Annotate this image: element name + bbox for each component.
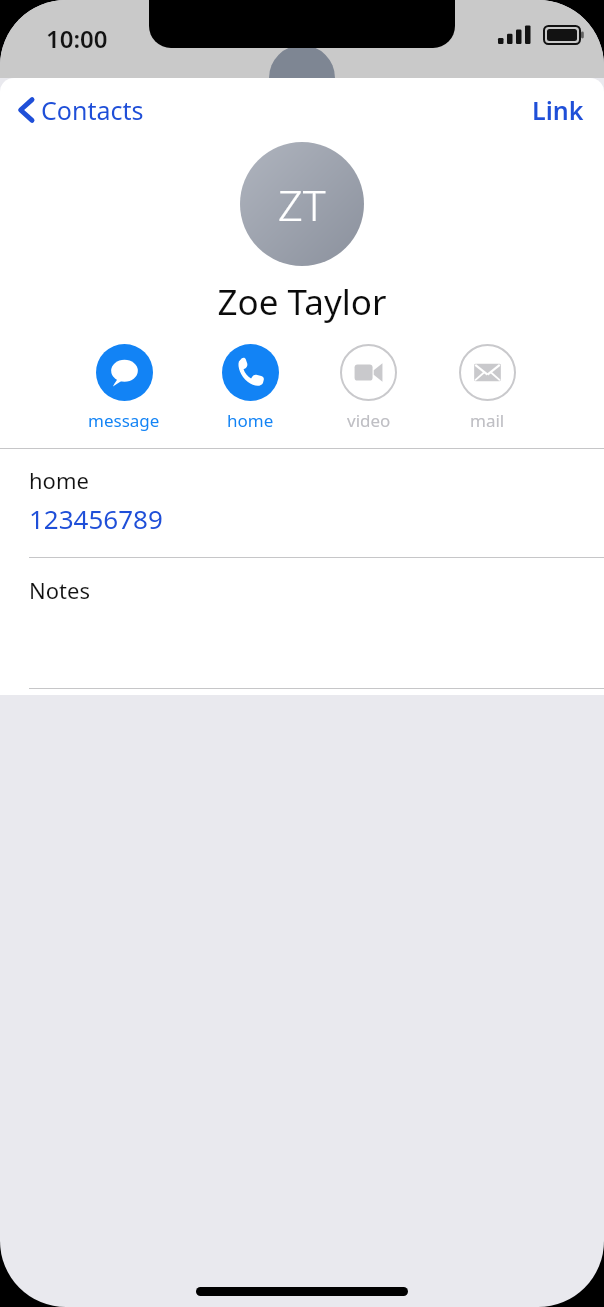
staticText: ZT xyxy=(278,175,326,234)
button[interactable]: mail xyxy=(457,344,518,432)
button[interactable]: Link xyxy=(512,85,604,135)
staticText: home xyxy=(29,465,89,495)
staticText: 10:00 xyxy=(46,22,108,55)
button[interactable]: video xyxy=(338,344,399,432)
staticText: message xyxy=(88,409,160,432)
staticText: Zoe Taylor xyxy=(0,278,604,326)
staticText: Contacts xyxy=(41,93,144,127)
staticText: Notes xyxy=(29,575,90,605)
button[interactable]: Contacts xyxy=(0,87,156,133)
staticText: Link xyxy=(532,93,584,127)
staticText: home xyxy=(227,409,274,432)
button[interactable]: message xyxy=(86,344,162,432)
button[interactable]: Notes xyxy=(0,558,604,688)
button[interactable]: home xyxy=(220,344,281,432)
button[interactable]: home xyxy=(0,449,604,557)
staticText: 123456789 xyxy=(29,501,163,536)
staticText: video xyxy=(347,409,391,432)
staticText: mail xyxy=(470,409,505,432)
